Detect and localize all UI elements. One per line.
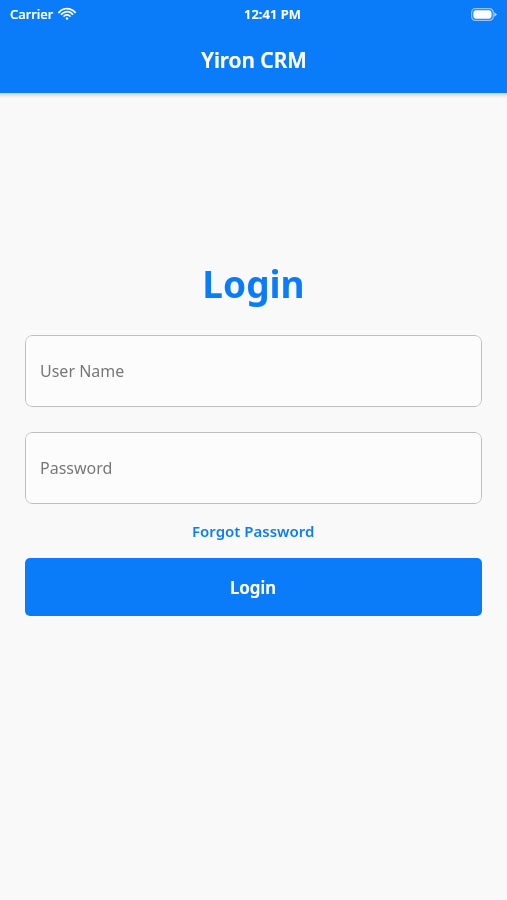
button[interactable]: Login bbox=[25, 558, 482, 616]
other: Wi-Fi signal bbox=[59, 8, 75, 20]
staticText: Password bbox=[40, 457, 113, 479]
staticText: Carrier bbox=[10, 5, 54, 23]
staticText: Forgot Password bbox=[192, 521, 315, 541]
staticText: Login bbox=[230, 576, 277, 599]
other: Battery full bbox=[471, 8, 497, 21]
staticText: User Name bbox=[40, 360, 125, 382]
staticText: Login bbox=[0, 258, 507, 308]
button[interactable]: Forgot Password bbox=[186, 518, 321, 544]
staticText: Yiron CRM bbox=[201, 46, 307, 75]
button[interactable]: User Name bbox=[25, 335, 482, 407]
staticText: 12:41 PM bbox=[244, 5, 301, 23]
button[interactable]: Password bbox=[25, 432, 482, 504]
